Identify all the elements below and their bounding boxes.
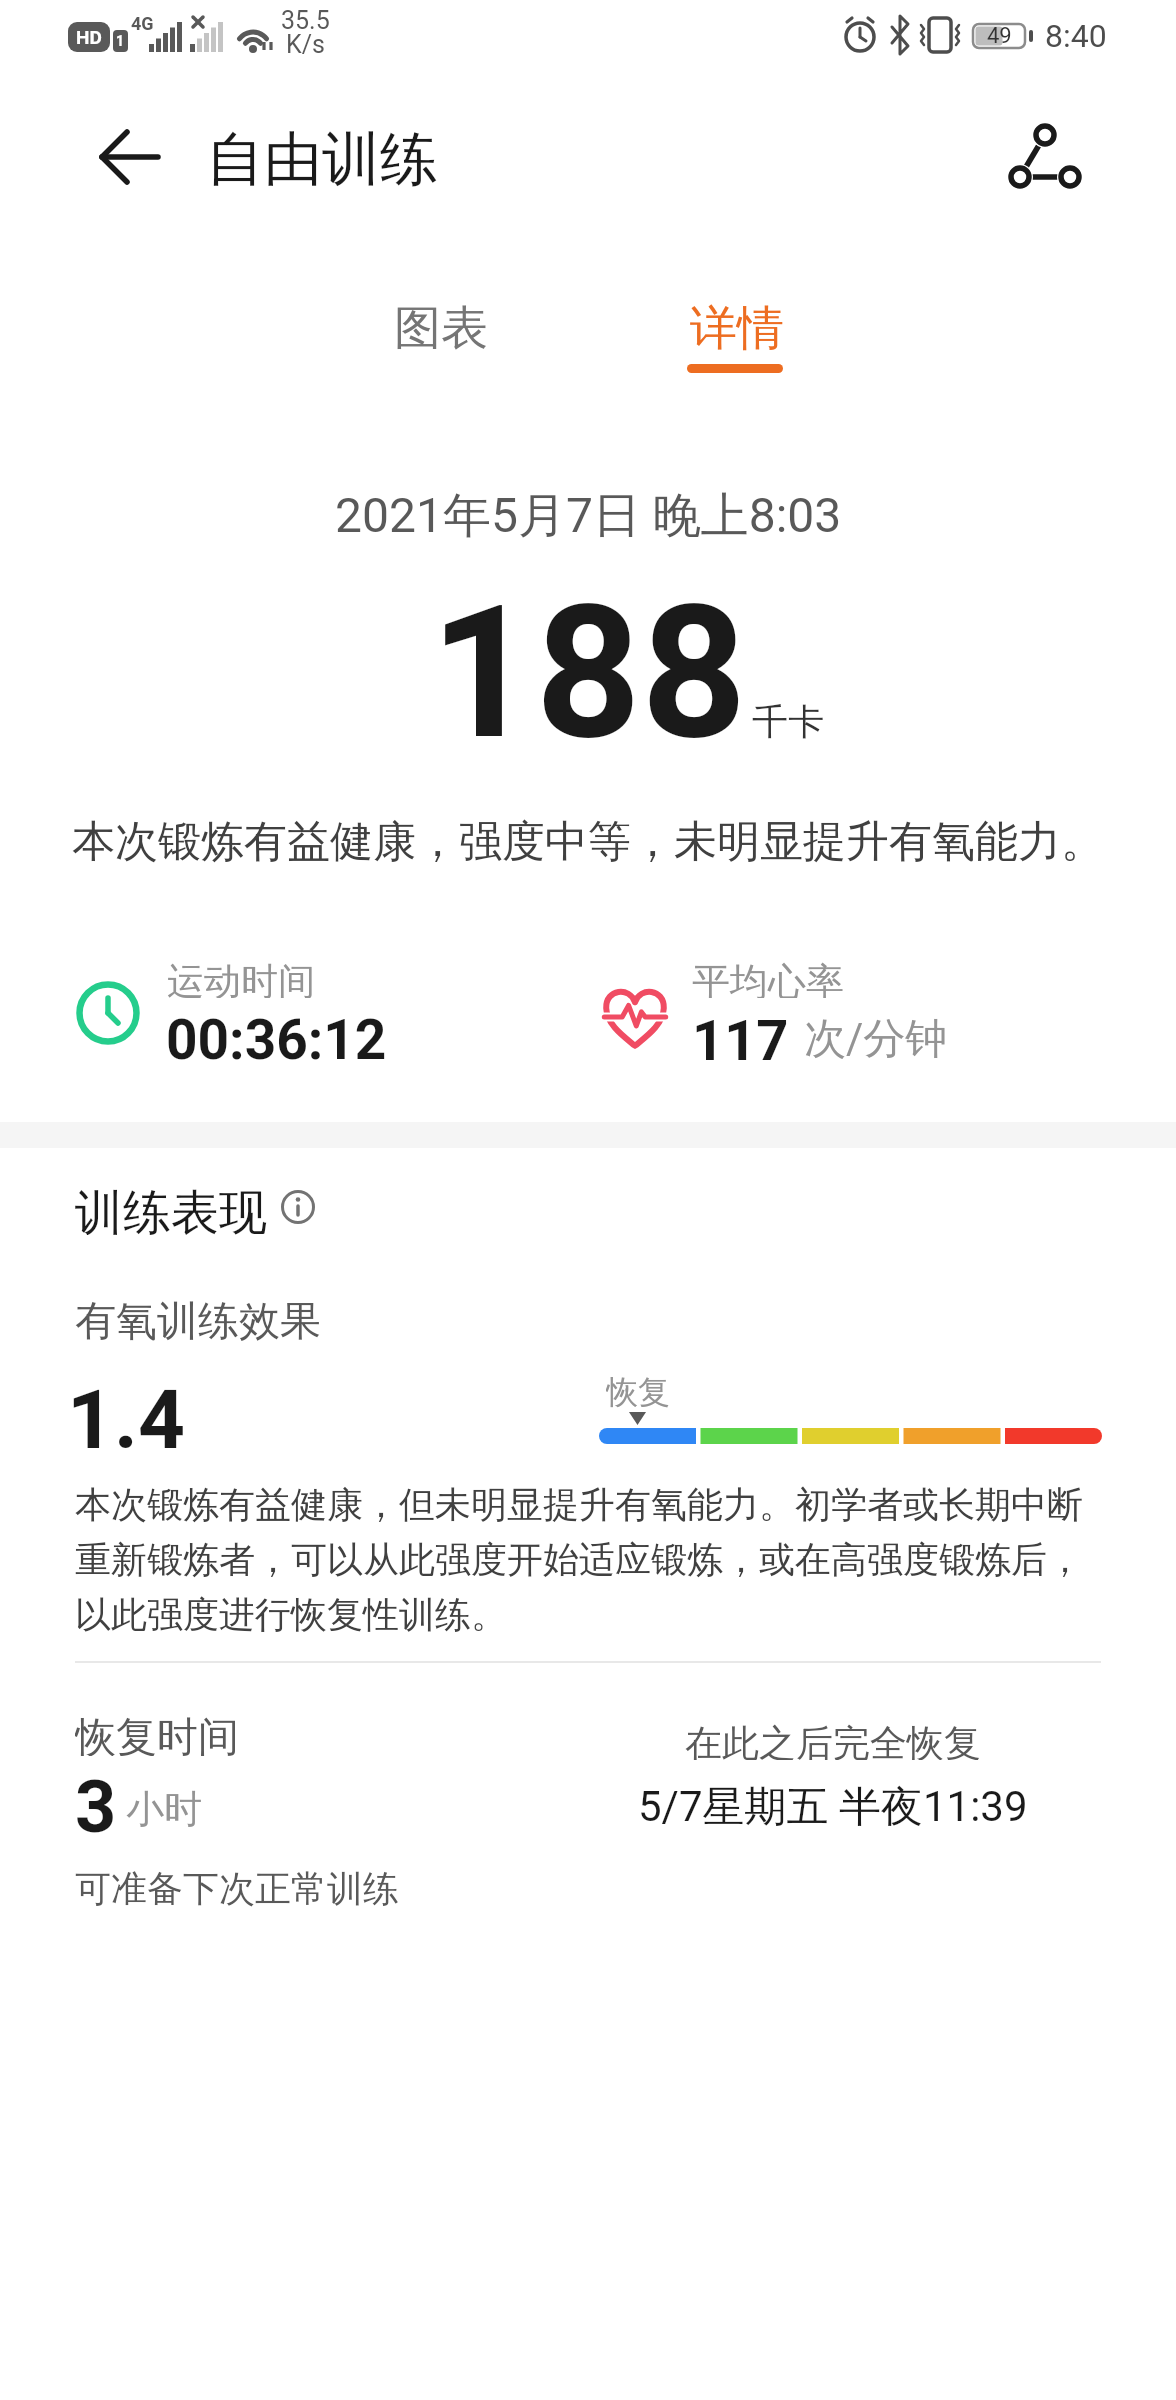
staticText: 可准备下次正常训练 [75,1866,399,1910]
staticText: 1.4 [67,1372,185,1462]
staticText: 8:40 [1045,17,1107,55]
button[interactable]: 图表 [341,299,541,351]
staticText: 117 [692,1008,789,1070]
staticText: 49 [987,23,1012,49]
staticText: 平均心率 [692,958,844,998]
staticText: 本次锻炼有益健康，但未明显提升有氧能力。初学者或长期中断 重新锻炼者，可以从此强… [75,1482,1083,1638]
button[interactable]: 详情 [637,299,837,351]
staticText: 详情 [690,299,784,351]
staticText: 2021年5月7日 晚上8:03 [335,486,842,542]
staticText: 自由训练 [206,123,438,196]
button[interactable] [281,1190,315,1224]
staticText: 次/分钟 [804,1013,948,1066]
staticText: 4G [131,13,154,34]
staticText: 小时 [126,1785,202,1833]
staticText: 恢复时间 [75,1712,239,1756]
staticText: K/s [286,30,325,54]
button[interactable] [98,128,162,186]
staticText: 有氧训练效果 [75,1296,321,1348]
staticText: 训练表现 [75,1183,267,1235]
staticText: 3 [75,1765,117,1841]
staticText: 在此之后完全恢复 [685,1720,981,1760]
staticText: 图表 [394,299,488,351]
staticText: HD [76,26,102,48]
staticText: 5/7星期五 半夜11:39 [638,1781,1028,1834]
staticText: 1 [116,33,125,49]
staticText: 恢复 [606,1372,670,1408]
staticText: 本次锻炼有益健康，强度中等，未明显提升有氧能力。 [72,815,1104,869]
staticText: 188 [430,565,747,781]
staticText: 千卡 [752,699,824,743]
staticText: 00:36:12 [166,1008,387,1070]
staticText: 运动时间 [167,958,315,998]
staticText: 35.5 [281,6,330,32]
button[interactable] [1008,120,1084,192]
